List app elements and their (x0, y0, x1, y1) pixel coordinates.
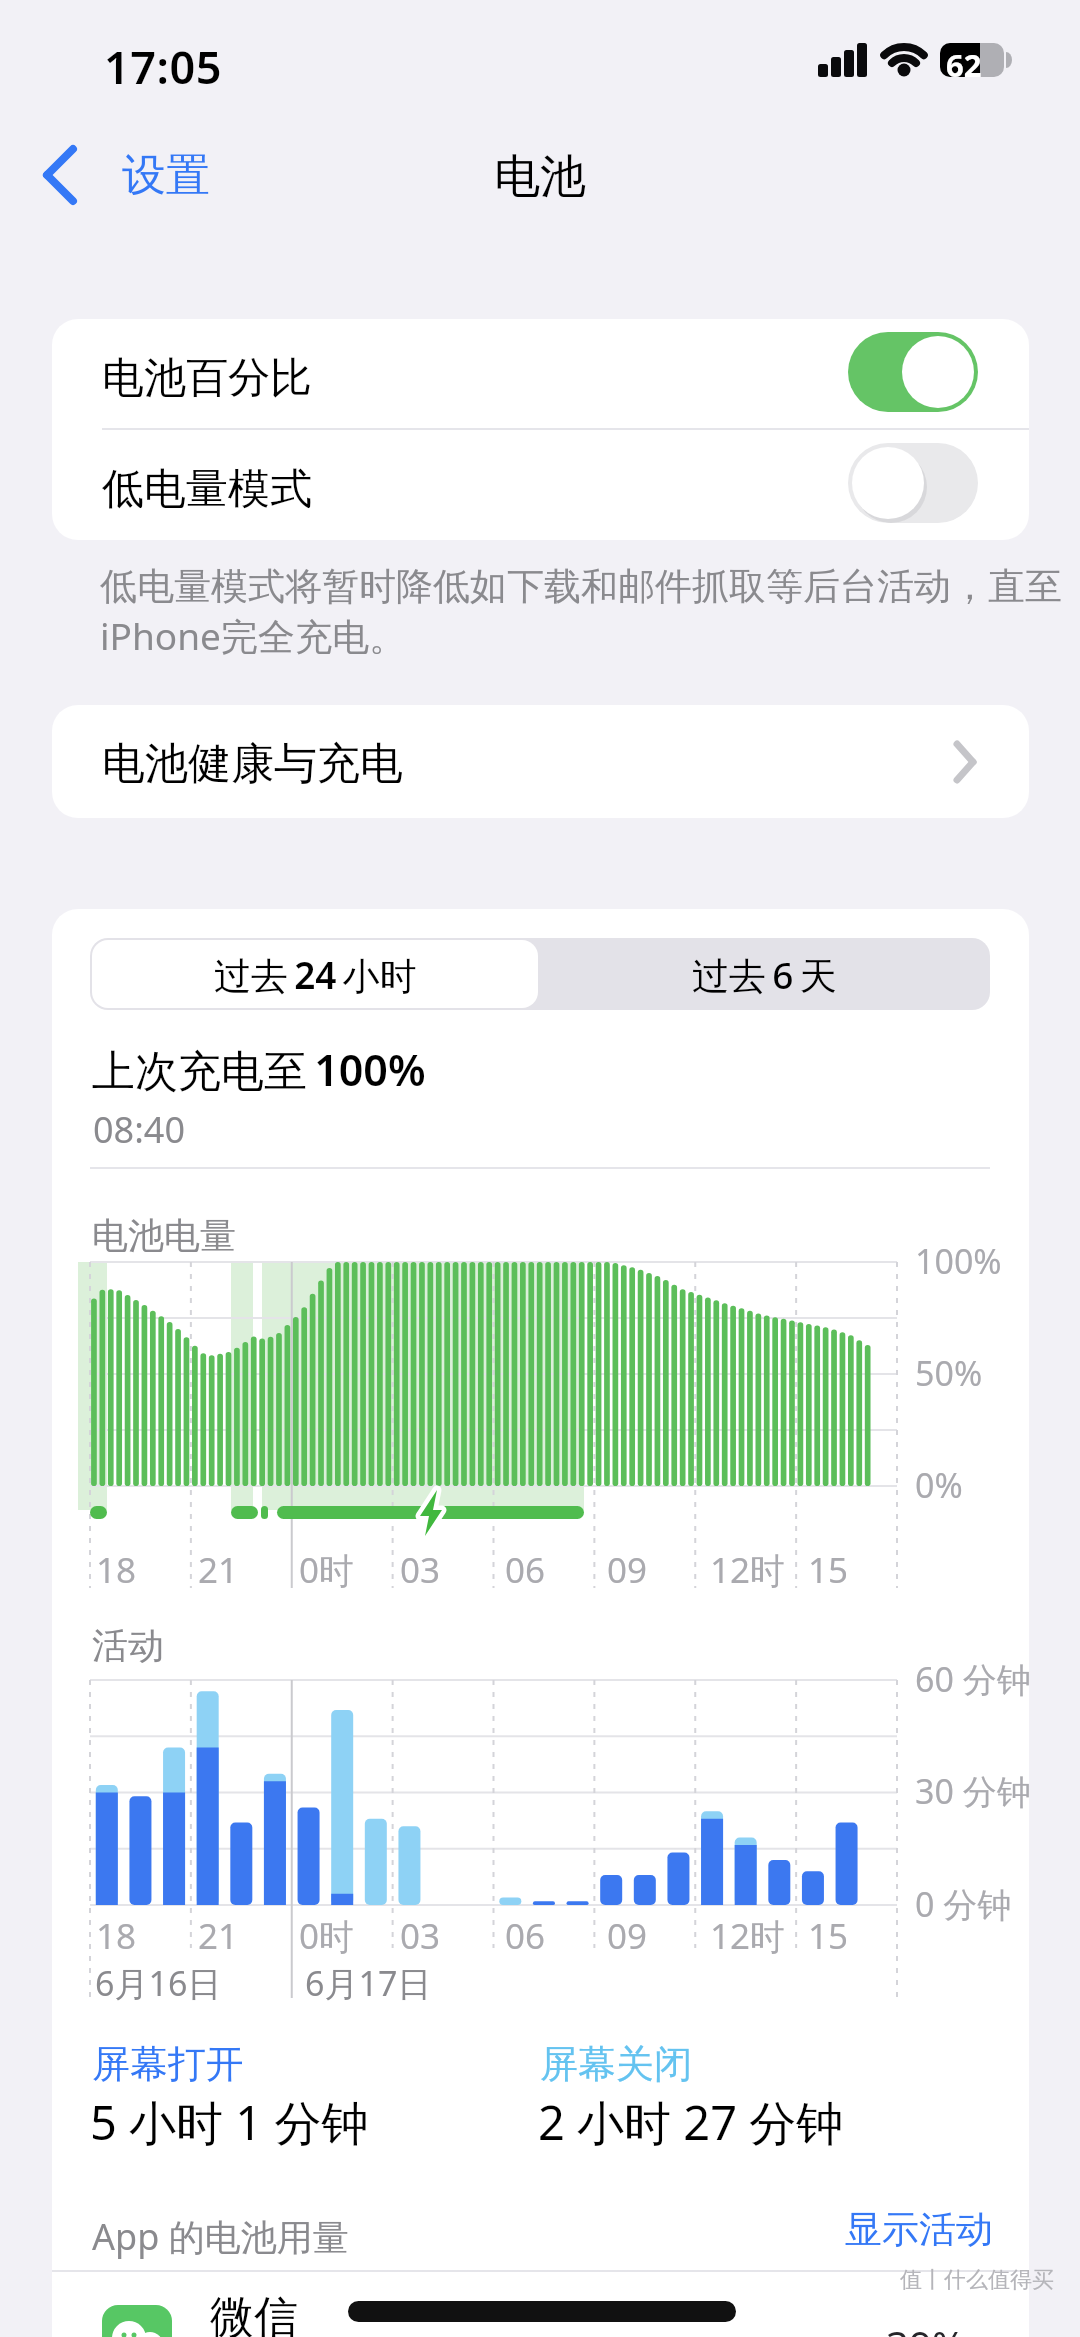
staticText: 设置 (122, 148, 210, 203)
button[interactable]: 微信 (52, 2272, 1029, 2337)
button[interactable]: 显示活动 (845, 2206, 997, 2256)
staticText: 06 (505, 1912, 546, 1960)
staticText: 12时 (710, 1546, 786, 1594)
staticText: 03 (400, 1912, 441, 1960)
staticText: 2 小时 27 分钟 (538, 2090, 844, 2154)
staticText: iPhone完全充电。 (100, 610, 406, 661)
staticText: 09 (607, 1546, 648, 1594)
button[interactable]: 电池百分比 (52, 319, 1029, 429)
staticText: 电池百分比 (102, 352, 312, 405)
staticText: 62 (946, 44, 982, 86)
staticText: 60 分钟 (915, 1656, 1031, 1702)
staticText: 屏幕打开 (92, 2040, 244, 2088)
staticText: 0时 (299, 1912, 355, 1960)
staticText: 09 (607, 1912, 648, 1960)
staticText: 18 (96, 1912, 137, 1960)
staticText: 08:40 (93, 1105, 186, 1154)
button[interactable]: 低电量模式 (52, 429, 1029, 540)
staticText: 电池 (494, 148, 586, 206)
staticText: 低电量模式 (102, 463, 312, 516)
staticText: 06 (505, 1546, 546, 1594)
staticText: 100% (915, 1238, 1002, 1284)
staticText: 0 分钟 (915, 1881, 1012, 1927)
staticText: 5 小时 1 分钟 (90, 2090, 369, 2154)
staticText: 上次充电至 100% (92, 1040, 426, 1099)
button[interactable]: 过去 6 天 (538, 938, 990, 1010)
staticText: 18 (96, 1546, 137, 1594)
button[interactable] (848, 332, 978, 412)
staticText: 低电量模式将暂时降低如下载和邮件抓取等后台活动，直至 (100, 563, 1062, 610)
staticText: 过去 6 天 (692, 949, 837, 1000)
staticText: 50% (915, 1350, 983, 1396)
staticText: 6月16日 (95, 1960, 222, 2006)
staticText: 21 (198, 1912, 239, 1960)
staticText: 15 (808, 1546, 849, 1594)
staticText: 30 分钟 (915, 1768, 1031, 1814)
button[interactable]: 过去 24 小时 (92, 940, 538, 1008)
staticText: 0时 (299, 1546, 355, 1594)
staticText: 03 (400, 1546, 441, 1594)
staticText: 显示活动 (845, 2206, 993, 2253)
staticText: 值丨什么值得买 (900, 2266, 1054, 2294)
staticText: 电池电量 (92, 1213, 236, 1258)
staticText: 6月17日 (305, 1960, 432, 2006)
button[interactable]: 电池健康与充电 (52, 705, 1029, 818)
staticText: 39% (886, 2318, 965, 2337)
staticText: App 的电池用量 (92, 2212, 349, 2261)
button[interactable]: 设置 (40, 140, 210, 210)
staticText: 15 (808, 1912, 849, 1960)
staticText: 过去 24 小时 (214, 949, 417, 1000)
staticText: 电池健康与充电 (102, 737, 403, 791)
staticText: 21 (198, 1546, 239, 1594)
staticText: 活动 (92, 1623, 164, 1668)
button[interactable] (848, 443, 978, 523)
staticText: 0% (915, 1462, 963, 1508)
staticText: 17:05 (104, 36, 222, 97)
staticText: 12时 (710, 1912, 786, 1960)
staticText: 屏幕关闭 (540, 2040, 692, 2088)
staticText: 微信 (210, 2290, 298, 2337)
